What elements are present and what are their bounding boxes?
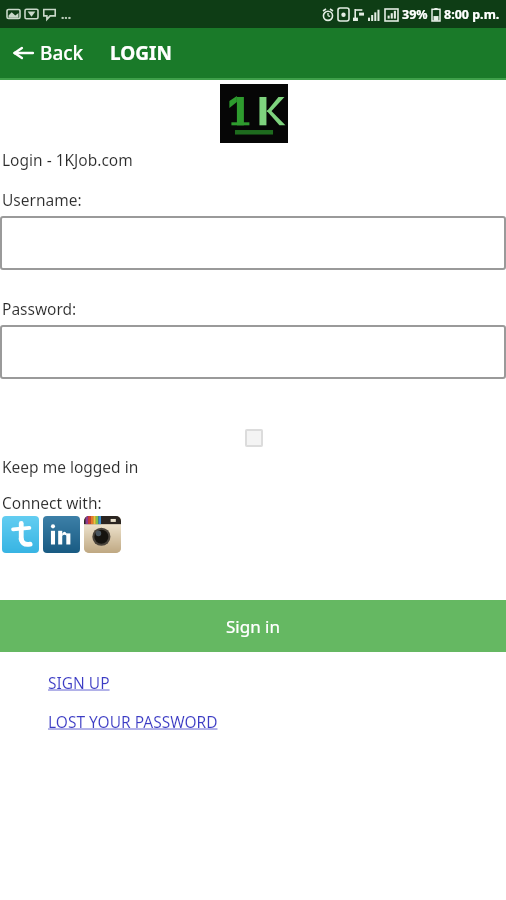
button[interactable]: Keep me logged in — [245, 429, 263, 447]
button[interactable]: Instagram — [84, 516, 121, 553]
staticText: 8:00 p.m. — [444, 6, 500, 23]
staticText: Back — [40, 40, 84, 66]
button[interactable]: LOST YOUR PASSWORD — [48, 711, 218, 732]
staticText: LOST YOUR PASSWORD — [48, 711, 218, 732]
staticText: Password: — [2, 298, 77, 319]
other: Back — [12, 42, 34, 64]
staticText: Username: — [2, 189, 82, 210]
button[interactable]: Back — [0, 34, 96, 72]
staticText: Login - 1KJob.com — [2, 149, 133, 170]
staticText: Keep me logged in — [2, 456, 139, 477]
button[interactable]: Sign in — [0, 600, 506, 652]
button[interactable] — [0, 325, 506, 379]
staticText: 39% — [402, 6, 428, 23]
button[interactable]: Twitter — [2, 516, 39, 553]
staticText: Connect with: — [2, 492, 102, 513]
staticText: SIGN UP — [48, 672, 110, 693]
staticText: LOGIN — [110, 40, 172, 66]
button[interactable]: LinkedIn — [43, 516, 80, 553]
staticText: Sign in — [226, 615, 280, 638]
staticText: ... — [61, 6, 72, 22]
button[interactable]: SIGN UP — [48, 672, 110, 693]
button[interactable] — [0, 216, 506, 270]
